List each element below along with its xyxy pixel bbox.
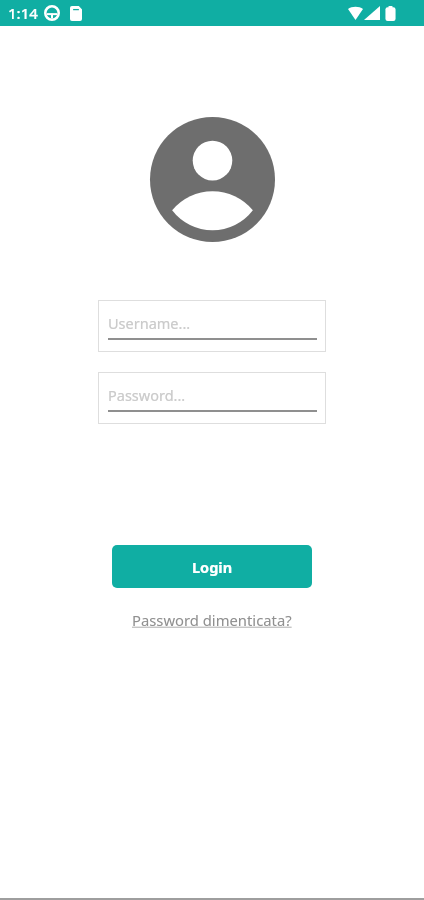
staticText: Username...	[108, 313, 191, 333]
other: Driving mode	[44, 5, 60, 21]
other: Note	[70, 6, 82, 21]
other: Mobile signal	[364, 6, 380, 20]
button[interactable]: Username...	[98, 300, 326, 352]
other: Battery	[385, 6, 396, 21]
staticText: Login	[192, 557, 233, 577]
other: Wi-Fi	[348, 6, 363, 20]
button[interactable]: Login	[112, 545, 312, 588]
button[interactable]: Password dimenticata?	[126, 608, 298, 632]
staticText: Password dimenticata?	[132, 610, 292, 630]
button[interactable]: Password...	[98, 372, 326, 424]
other: Account avatar	[150, 117, 275, 242]
staticText: 1:14	[8, 3, 38, 23]
staticText: Password...	[108, 385, 186, 405]
